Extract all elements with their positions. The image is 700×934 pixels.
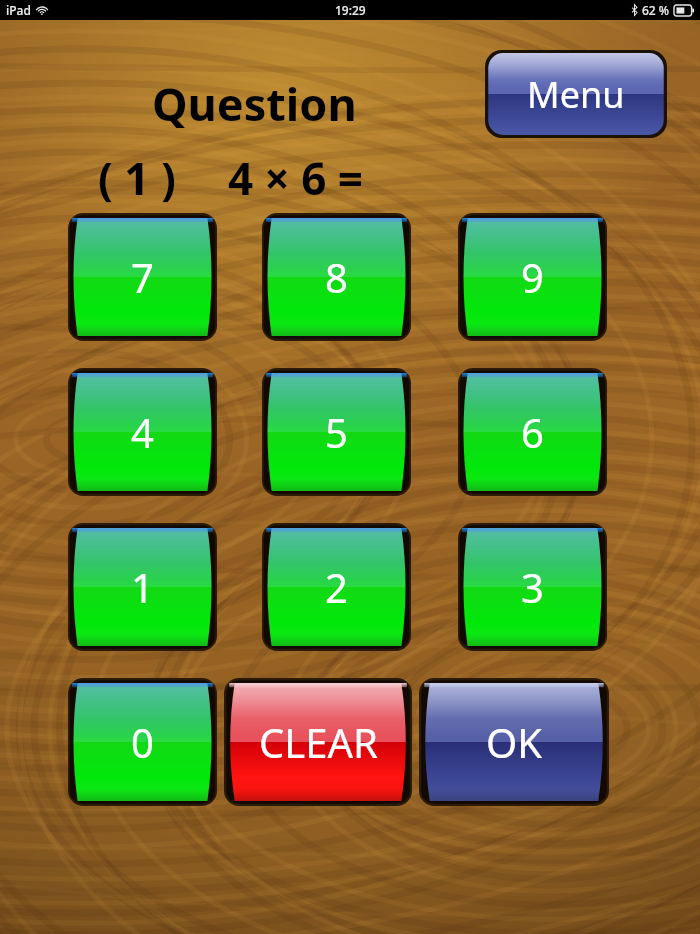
- staticText: 6: [521, 405, 544, 459]
- button[interactable]: OK: [419, 678, 609, 806]
- staticText: 2: [325, 560, 348, 614]
- staticText: 7: [131, 250, 154, 304]
- staticText: CLEAR: [259, 715, 378, 769]
- button[interactable]: 9: [458, 213, 607, 341]
- button[interactable]: 6: [458, 368, 607, 496]
- staticText: 4 × 6 =: [228, 148, 363, 208]
- button[interactable]: 5: [262, 368, 411, 496]
- button[interactable]: 3: [458, 523, 607, 651]
- staticText: 4: [131, 405, 154, 459]
- staticText: iPad: [6, 2, 31, 18]
- button[interactable]: CLEAR: [224, 678, 412, 806]
- button[interactable]: 1: [68, 523, 217, 651]
- staticText: 0: [131, 715, 154, 769]
- button[interactable]: 2: [262, 523, 411, 651]
- staticText: 5: [325, 405, 348, 459]
- staticText: 19:29: [335, 2, 366, 18]
- button[interactable]: 7: [68, 213, 217, 341]
- staticText: 9: [521, 250, 544, 304]
- staticText: 8: [325, 250, 348, 304]
- staticText: 1: [131, 560, 154, 614]
- staticText: OK: [486, 715, 542, 769]
- button[interactable]: 4: [68, 368, 217, 496]
- staticText: Question: [152, 73, 357, 134]
- staticText: 62 %: [642, 2, 670, 18]
- button[interactable]: 0: [68, 678, 217, 806]
- staticText: ( 1 ): [98, 148, 176, 208]
- staticText: 3: [521, 560, 544, 614]
- button[interactable]: Menu: [485, 50, 667, 138]
- button[interactable]: 8: [262, 213, 411, 341]
- staticText: Menu: [527, 70, 625, 119]
